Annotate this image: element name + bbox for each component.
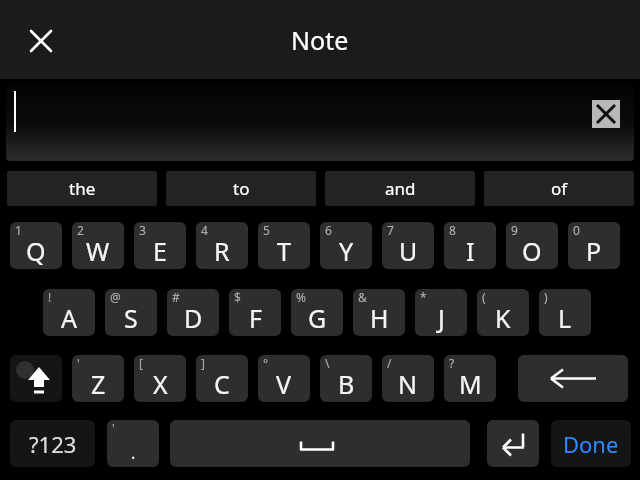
staticText: ?123 [29,429,77,459]
staticText: K [495,301,511,335]
button[interactable]: 2 [72,222,124,269]
button[interactable]: % [291,289,343,336]
staticText: . [131,442,136,464]
staticText: M [459,367,482,401]
staticText: / [387,355,392,371]
staticText: 5 [263,222,270,238]
button[interactable]: Enter [487,420,539,467]
staticText: I [466,234,475,268]
staticText: R [214,234,230,268]
button[interactable]: 8 [444,222,496,269]
staticText: 1 [15,222,22,238]
staticText: Z [91,367,106,401]
staticText: Note [291,23,349,57]
staticText: 4 [201,222,208,238]
staticText: ! [48,289,52,305]
staticText: \ [325,355,330,371]
button[interactable]: 1 [10,222,62,269]
staticText: Done [563,429,619,459]
staticText: of [551,177,568,200]
button[interactable]: 4 [196,222,248,269]
staticText: W [86,234,110,268]
staticText: F [249,301,262,335]
staticText: $ [234,289,241,305]
staticText: S [124,301,138,335]
button[interactable]: ] [196,355,248,402]
staticText: N [398,367,418,401]
button[interactable]: ) [539,289,591,336]
staticText: ' [112,420,115,436]
button[interactable]: Shift [10,355,62,402]
staticText: ° [263,355,269,371]
staticText: [ [139,355,143,371]
staticText: A [61,301,77,335]
button[interactable]: ( [477,289,529,336]
staticText: Q [26,234,46,268]
button[interactable]: 0 [568,222,620,269]
button[interactable]: and [325,171,475,206]
staticText: 2 [77,222,84,238]
button[interactable]: 9 [506,222,558,269]
staticText: 6 [325,222,332,238]
staticText: V [276,367,292,401]
button[interactable]: to [166,171,316,206]
button[interactable]: 3 [134,222,186,269]
staticText: B [338,367,355,401]
button[interactable]: Clear text [592,100,620,128]
button[interactable]: 7 [382,222,434,269]
button[interactable]: ° [258,355,310,402]
button[interactable]: Close [19,19,63,63]
staticText: L [558,301,572,335]
staticText: ( [482,289,486,305]
staticText: 0 [573,222,580,238]
button[interactable]: \ [320,355,372,402]
staticText: ) [544,289,548,305]
staticText: ? [449,355,455,371]
staticText: 9 [511,222,518,238]
button[interactable]: the [7,171,157,206]
button[interactable]: [ [134,355,186,402]
staticText: U [399,234,418,268]
staticText: ' [77,355,80,371]
staticText: @ [110,289,121,305]
staticText: * [420,289,427,305]
staticText: T [277,234,291,268]
staticText: & [358,289,367,305]
button[interactable]: Done [551,420,631,467]
staticText: P [586,234,602,268]
button[interactable]: ?123 [10,420,95,467]
button[interactable]: of [484,171,634,206]
button[interactable]: @ [105,289,157,336]
staticText: ] [201,355,205,371]
staticText: # [172,289,180,305]
button[interactable]: & [353,289,405,336]
button[interactable]: / [382,355,434,402]
button[interactable]: Backspace [518,355,628,402]
button[interactable]: 6 [320,222,372,269]
staticText: D [184,301,203,335]
button[interactable]: ! [43,289,95,336]
staticText: the [69,177,96,200]
button[interactable]: ' [107,420,159,467]
staticText: % [296,289,306,305]
button[interactable]: * [415,289,467,336]
staticText: 8 [449,222,456,238]
button[interactable]: ' [72,355,124,402]
button[interactable] [6,85,634,161]
staticText: G [308,301,327,335]
staticText: O [522,234,542,268]
button[interactable]: $ [229,289,281,336]
staticText: X [153,367,168,401]
staticText: J [438,301,445,335]
staticText: to [233,177,250,200]
staticText: and [385,177,416,200]
button[interactable]: # [167,289,219,336]
staticText: H [370,301,389,335]
button[interactable]: 5 [258,222,310,269]
staticText: E [153,234,167,268]
staticText: C [214,367,230,401]
button[interactable]: Space [170,420,470,467]
staticText: 7 [387,222,394,238]
button[interactable]: ? [444,355,496,402]
staticText: Y [339,234,354,268]
